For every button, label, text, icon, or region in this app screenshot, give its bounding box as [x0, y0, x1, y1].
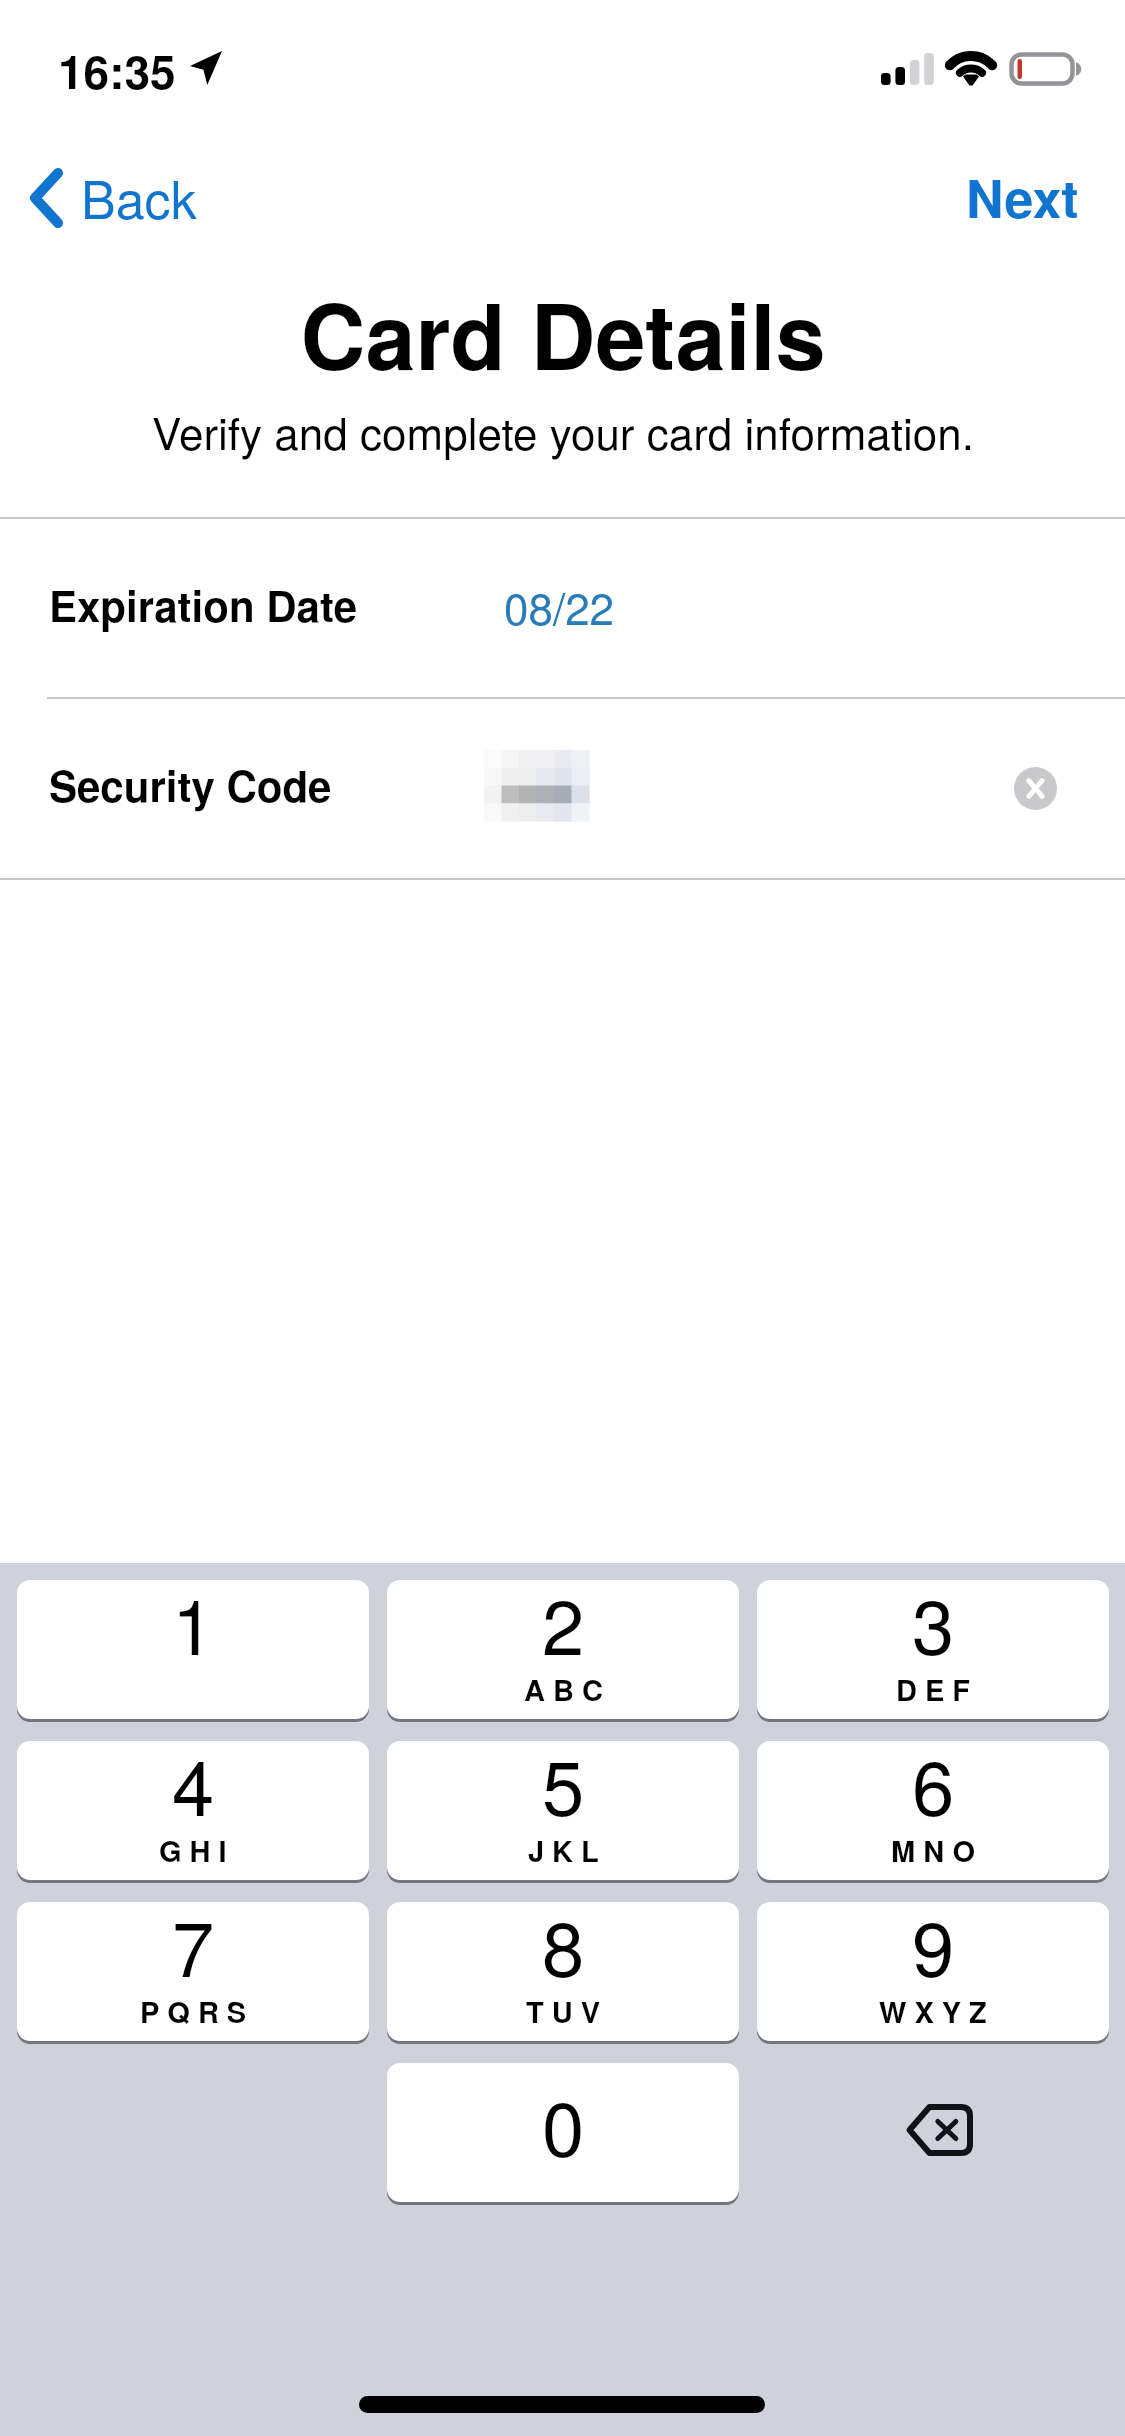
button[interactable]: 6	[757, 1741, 1109, 1880]
staticText: DEF	[896, 1668, 979, 1710]
button[interactable]: Clear security code	[1014, 767, 1057, 810]
button[interactable]: 4	[17, 1741, 369, 1880]
button[interactable]: 0	[387, 2063, 739, 2202]
staticText: 4	[172, 1741, 215, 1838]
staticText: Back	[81, 159, 197, 233]
staticText: MNO	[891, 1829, 983, 1871]
staticText: Verify and complete your card informatio…	[152, 399, 974, 462]
staticText: TUV	[526, 1990, 609, 2032]
button[interactable]: Delete	[757, 2063, 1109, 2202]
staticText: JKL	[528, 1829, 607, 1871]
button[interactable]: Security Code	[0, 699, 1125, 878]
staticText: 5	[542, 1741, 585, 1838]
staticText: 3	[912, 1580, 955, 1677]
staticText: Expiration Date	[49, 575, 358, 635]
staticText: Next	[966, 159, 1079, 233]
button[interactable]: 8	[387, 1902, 739, 2041]
staticText: 0	[542, 2070, 585, 2179]
staticText: 2	[542, 1580, 585, 1677]
staticText: Card Details	[300, 269, 826, 398]
staticText: 6	[912, 1741, 955, 1838]
button[interactable]: Next	[936, 148, 1109, 248]
button[interactable]: Back	[8, 148, 213, 248]
staticText: Security Code	[49, 755, 332, 815]
staticText: 8	[542, 1902, 585, 1999]
staticText: 08/22	[504, 574, 615, 637]
staticText: GHI	[159, 1829, 235, 1871]
staticText: WXYZ	[879, 1990, 995, 2032]
staticText: 16:35	[58, 37, 176, 103]
staticText: 9	[912, 1902, 955, 1999]
button[interactable]: 5	[387, 1741, 739, 1880]
button[interactable]: Expiration Date	[0, 519, 1125, 697]
button[interactable]: 9	[757, 1902, 1109, 2041]
button[interactable]: 7	[17, 1902, 369, 2041]
staticText: ABC	[524, 1668, 611, 1710]
button[interactable]: 1	[17, 1580, 369, 1719]
button[interactable]: 2	[387, 1580, 739, 1719]
button[interactable]: 3	[757, 1580, 1109, 1719]
staticText: PQRS	[140, 1990, 255, 2032]
staticText: 7	[172, 1902, 215, 1999]
staticText: 1	[172, 1580, 215, 1677]
